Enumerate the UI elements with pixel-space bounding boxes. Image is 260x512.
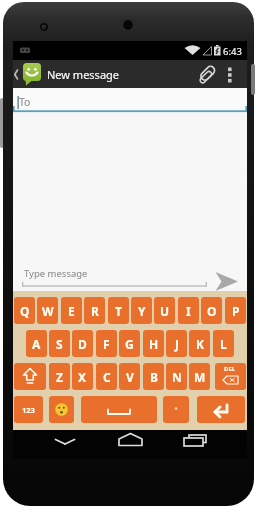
button[interactable]: O bbox=[201, 297, 222, 324]
button[interactable]: Type message bbox=[19, 266, 209, 284]
button[interactable]: K bbox=[189, 330, 210, 357]
button[interactable]: To bbox=[13, 88, 247, 112]
staticText: 123 bbox=[22, 405, 35, 415]
staticText: E bbox=[68, 303, 75, 319]
button[interactable] bbox=[111, 430, 151, 459]
button[interactable]: DEL bbox=[215, 363, 246, 390]
staticText: I bbox=[186, 303, 191, 319]
staticText: U bbox=[160, 303, 170, 319]
button[interactable]: L bbox=[213, 330, 234, 357]
staticText: C bbox=[103, 369, 111, 385]
staticText: Type message bbox=[24, 267, 88, 280]
staticText: D bbox=[78, 336, 87, 352]
button[interactable]: V bbox=[119, 363, 140, 390]
staticText: W bbox=[42, 303, 54, 319]
staticText: N bbox=[172, 369, 182, 385]
button[interactable]: R bbox=[84, 297, 105, 324]
staticText: G bbox=[125, 336, 134, 352]
button[interactable]: M bbox=[189, 363, 210, 390]
staticText: A bbox=[32, 336, 41, 352]
staticText: F bbox=[103, 336, 110, 352]
button[interactable] bbox=[49, 396, 74, 423]
button[interactable]: H bbox=[143, 330, 164, 357]
staticText: V bbox=[126, 369, 134, 385]
button[interactable]: S bbox=[49, 330, 70, 357]
staticText: O bbox=[207, 303, 217, 319]
button[interactable]: Y bbox=[131, 297, 152, 324]
staticText: To bbox=[19, 95, 31, 109]
button[interactable] bbox=[13, 60, 45, 88]
button[interactable]: A bbox=[26, 330, 47, 357]
button[interactable] bbox=[14, 363, 46, 390]
staticText: DEL bbox=[224, 365, 236, 373]
staticText: J bbox=[175, 336, 179, 352]
button[interactable] bbox=[163, 396, 189, 423]
button[interactable] bbox=[45, 430, 87, 459]
staticText: 6:43 bbox=[223, 45, 242, 58]
button[interactable]: 123 bbox=[14, 396, 43, 423]
button[interactable]: I bbox=[178, 297, 199, 324]
button[interactable]: X bbox=[72, 363, 93, 390]
button[interactable]: Q bbox=[14, 297, 35, 324]
button[interactable] bbox=[211, 268, 243, 291]
staticText: K bbox=[196, 336, 204, 352]
staticText: Q bbox=[20, 303, 30, 319]
button[interactable]: Z bbox=[49, 363, 70, 390]
button[interactable]: J bbox=[166, 330, 187, 357]
staticText: Y bbox=[138, 303, 146, 319]
button[interactable]: N bbox=[166, 363, 187, 390]
staticText: New message bbox=[47, 67, 120, 82]
staticText: S bbox=[56, 336, 63, 352]
button[interactable]: B bbox=[143, 363, 164, 390]
staticText: Z bbox=[56, 369, 63, 385]
button[interactable]: F bbox=[96, 330, 117, 357]
staticText: M bbox=[194, 369, 206, 385]
button[interactable]: E bbox=[61, 297, 82, 324]
staticText: B bbox=[150, 369, 158, 385]
button[interactable] bbox=[221, 60, 247, 88]
button[interactable]: T bbox=[108, 297, 129, 324]
button[interactable] bbox=[177, 430, 217, 459]
button[interactable]: C bbox=[96, 363, 117, 390]
button[interactable]: P bbox=[225, 297, 246, 324]
staticText: X bbox=[78, 369, 87, 385]
button[interactable]: D bbox=[72, 330, 93, 357]
button[interactable] bbox=[197, 396, 245, 423]
button[interactable]: W bbox=[37, 297, 58, 324]
staticText: H bbox=[149, 336, 159, 352]
staticText: R bbox=[91, 303, 99, 319]
staticText: P bbox=[232, 303, 240, 319]
button[interactable] bbox=[195, 62, 219, 86]
staticText: L bbox=[220, 336, 227, 352]
button[interactable]: U bbox=[154, 297, 175, 324]
button[interactable] bbox=[81, 396, 157, 423]
button[interactable]: G bbox=[119, 330, 140, 357]
staticText: T bbox=[115, 303, 122, 319]
